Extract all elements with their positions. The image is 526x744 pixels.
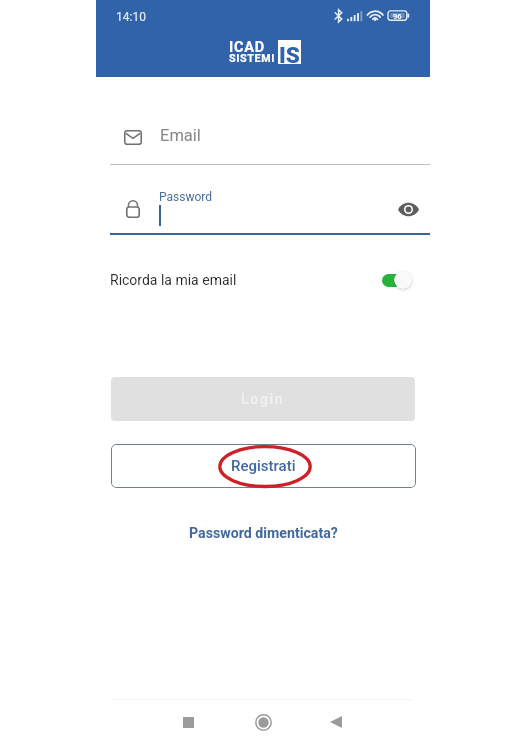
staticText: Registrati: [231, 457, 296, 475]
button[interactable]: Email: [110, 120, 430, 165]
button[interactable]: Show password: [392, 191, 424, 223]
button[interactable]: Registrati: [111, 444, 416, 488]
button[interactable]: Password dimenticata?: [183, 520, 344, 547]
button[interactable]: Home: [246, 705, 280, 739]
button[interactable]: Ricorda la mia email: [110, 263, 430, 297]
button[interactable]: Recent apps: [171, 705, 205, 739]
button[interactable]: Back: [319, 705, 353, 739]
staticText: ICAD: [229, 39, 266, 56]
staticText: 14:10: [116, 10, 146, 24]
staticText: 96: [393, 12, 402, 21]
staticText: Email: [160, 126, 201, 145]
staticText: SISTEMI: [229, 52, 276, 65]
staticText: Ricorda la mia email: [110, 272, 237, 288]
button[interactable]: Password: [110, 189, 430, 235]
staticText: IS: [279, 42, 300, 66]
staticText: Password dimenticata?: [189, 525, 338, 542]
staticText: Login: [241, 391, 285, 407]
staticText: Password: [159, 190, 213, 204]
